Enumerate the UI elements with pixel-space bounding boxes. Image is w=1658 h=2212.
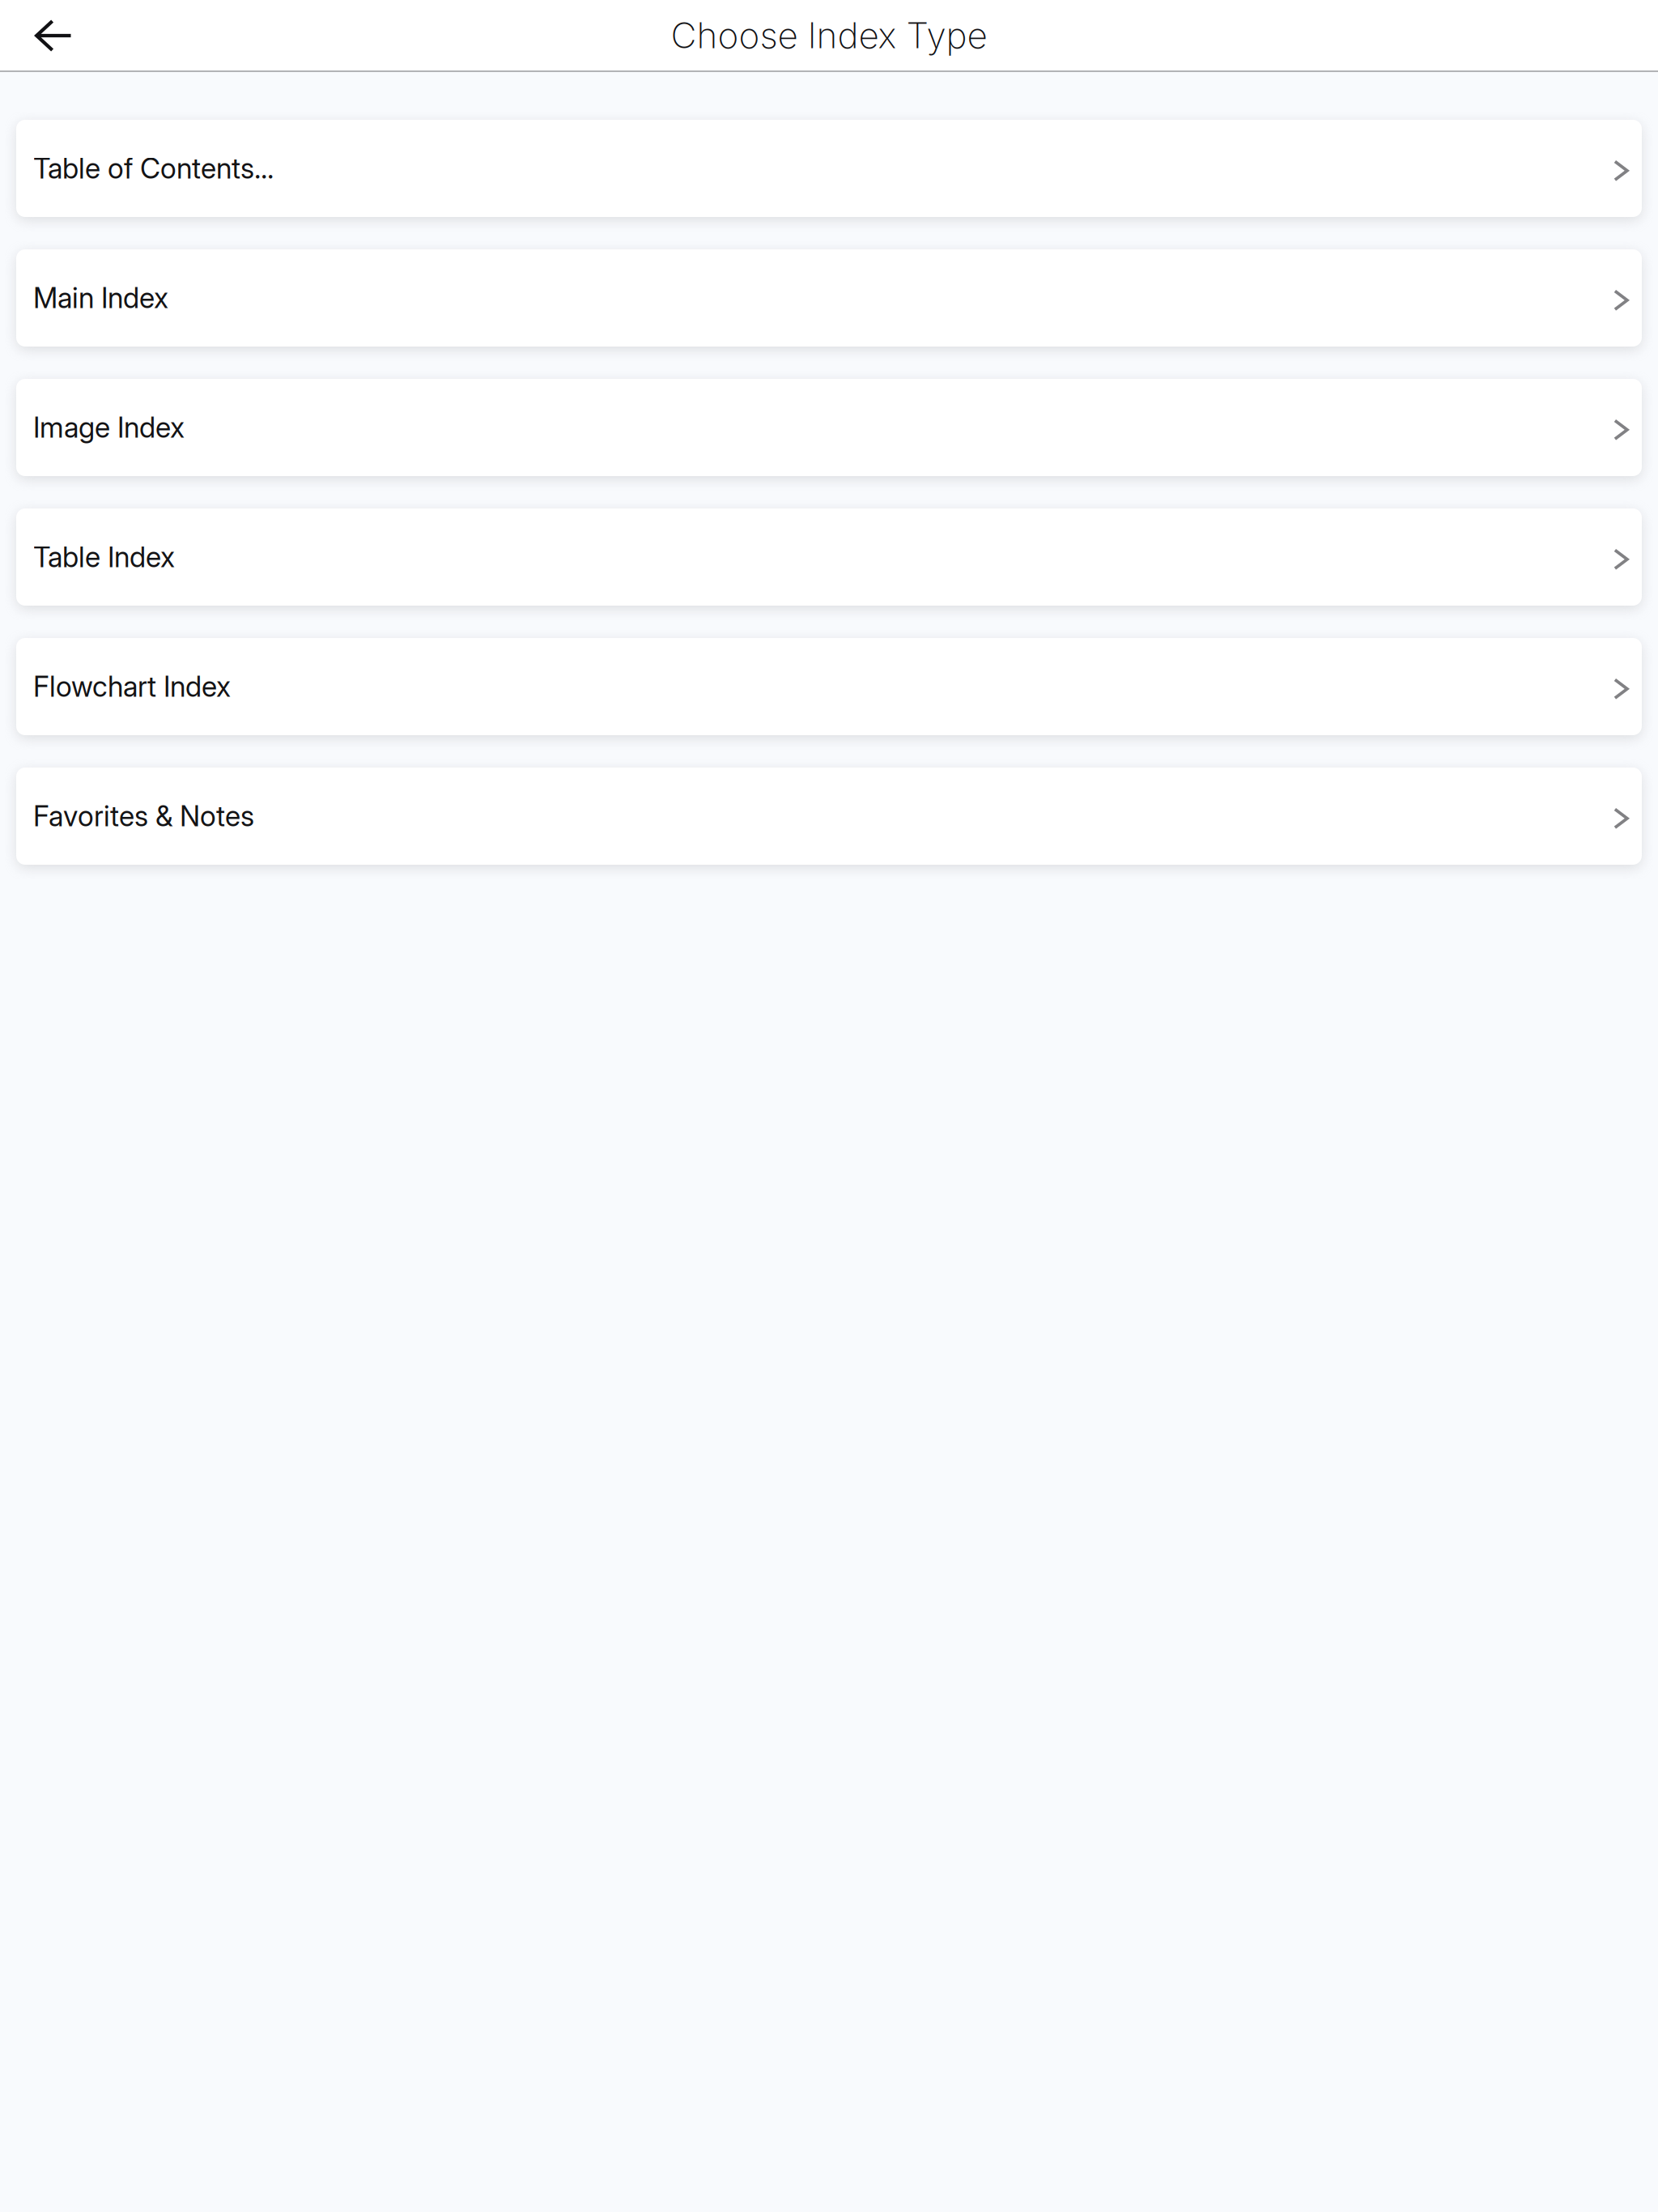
button[interactable]: Favorites & Notes (16, 768, 1642, 865)
button[interactable]: Table Index (16, 508, 1642, 606)
button[interactable]: Flowchart Index (16, 638, 1642, 735)
button[interactable]: Table of Contents... (16, 120, 1642, 217)
staticText: Table Index (33, 540, 175, 574)
staticText: Main Index (33, 281, 168, 315)
button[interactable]: Main Index (16, 249, 1642, 347)
button[interactable]: Image Index (16, 379, 1642, 476)
staticText: Image Index (33, 410, 185, 444)
staticText: Flowchart Index (33, 670, 231, 704)
staticText: Favorites & Notes (33, 799, 254, 833)
staticText: Table of Contents... (33, 151, 274, 185)
staticText: Choose Index Type (671, 14, 987, 57)
button[interactable]: Back (0, 0, 91, 70)
